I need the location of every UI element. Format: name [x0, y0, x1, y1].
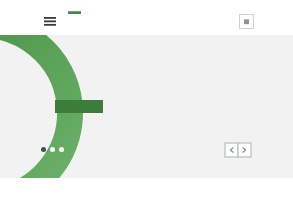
- button[interactable]: Next: [238, 143, 251, 157]
- button[interactable]: [41, 147, 46, 152]
- button[interactable]: Menu: [41, 14, 59, 28]
- button[interactable]: [50, 147, 55, 152]
- button[interactable]: Secure account: [239, 14, 254, 29]
- button[interactable]: Logo: [68, 9, 81, 14]
- button[interactable]: Previous: [225, 143, 238, 157]
- button[interactable]: [59, 147, 64, 152]
